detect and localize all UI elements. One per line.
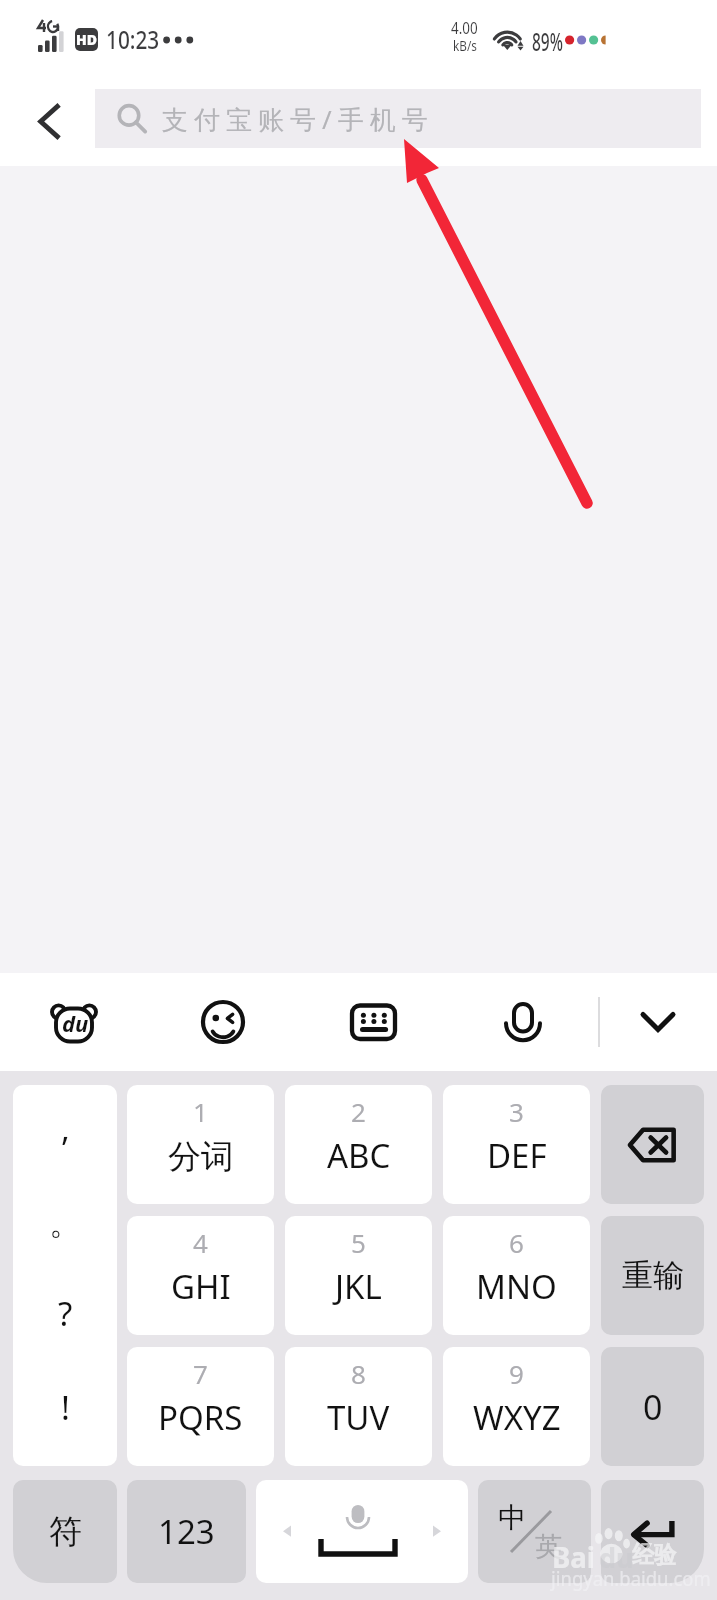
staticText: 123 [158, 1509, 215, 1554]
button[interactable]: 7 [127, 1347, 274, 1466]
button[interactable]: 1 [127, 1085, 274, 1204]
staticText: DEF [487, 1133, 547, 1178]
staticText: ! [61, 1385, 70, 1430]
staticText: 8 [351, 1356, 366, 1391]
staticText: 3 [509, 1094, 524, 1129]
staticText: du [599, 1539, 634, 1576]
staticText: TUV [327, 1395, 390, 1440]
button[interactable]: Voice input [489, 988, 557, 1056]
button[interactable]: 0 [601, 1347, 704, 1466]
button[interactable] [601, 1085, 704, 1204]
staticText: jingyan.baidu.com [551, 1566, 711, 1592]
button[interactable]: 重输 [601, 1216, 704, 1335]
button[interactable]: Keyboard layout [340, 988, 408, 1056]
staticText: 6 [509, 1225, 524, 1260]
staticText: JKL [335, 1264, 382, 1309]
staticText: ABC [327, 1133, 391, 1178]
button[interactable]: 4 [127, 1216, 274, 1335]
staticText: 4 [193, 1225, 208, 1260]
button[interactable]: 8 [285, 1347, 432, 1466]
staticText: 重输 [622, 1256, 684, 1295]
button[interactable]: 支付宝账号/手机号 [95, 89, 701, 148]
button[interactable]: Back [12, 86, 86, 156]
button[interactable]: Emoji [189, 988, 257, 1056]
staticText: 9 [509, 1356, 524, 1391]
button[interactable]: 6 [443, 1216, 590, 1335]
staticText: MNO [476, 1264, 557, 1309]
button[interactable]: 中 [478, 1480, 591, 1583]
staticText: 5 [351, 1225, 366, 1260]
button[interactable]: , [13, 1085, 117, 1466]
staticText: 中 [498, 1500, 526, 1535]
staticText: WXYZ [473, 1395, 561, 1440]
button[interactable] [601, 1480, 704, 1583]
button[interactable]: Baidu input [40, 988, 108, 1056]
staticText: , [61, 1106, 70, 1151]
staticText: 1 [193, 1094, 208, 1129]
staticText: HD [76, 30, 97, 49]
staticText: du [62, 1008, 89, 1038]
staticText: 2 [351, 1094, 366, 1129]
staticText: GHI [171, 1264, 231, 1309]
staticText: 10:23 [106, 21, 160, 56]
staticText: PQRS [158, 1395, 243, 1440]
staticText: Bai [552, 1537, 596, 1576]
staticText: 符 [49, 1511, 82, 1553]
staticText: 支付宝账号/手机号 [162, 101, 434, 137]
button[interactable]: Hide keyboard [624, 988, 692, 1056]
staticText: 4.00 [451, 17, 478, 39]
button[interactable]: 符 [13, 1480, 117, 1583]
staticText: 0 [643, 1384, 663, 1430]
staticText: kB/s [453, 36, 477, 55]
button[interactable]: 9 [443, 1347, 590, 1466]
staticText: 英 [535, 1530, 562, 1564]
staticText: ? [58, 1291, 73, 1336]
staticText: 经验 [632, 1540, 676, 1570]
button[interactable]: 2 [285, 1085, 432, 1204]
staticText: 7 [193, 1356, 208, 1391]
button[interactable]: 3 [443, 1085, 590, 1204]
button[interactable]: 5 [285, 1216, 432, 1335]
staticText: 分词 [168, 1136, 234, 1178]
staticText: 。 [49, 1202, 82, 1244]
button[interactable] [256, 1480, 468, 1583]
staticText: 89% [532, 24, 563, 58]
button[interactable]: 123 [127, 1480, 246, 1583]
